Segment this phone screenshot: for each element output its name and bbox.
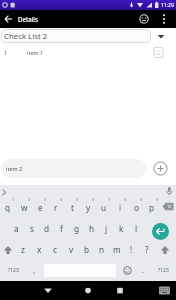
staticText: item 2: [6, 165, 23, 172]
staticText: 11:29: [161, 2, 174, 9]
button[interactable]: k: [114, 217, 129, 240]
button[interactable]: ,: [26, 259, 42, 281]
button[interactable]: [156, 281, 174, 300]
button[interactable]: !: [124, 240, 139, 259]
button[interactable]: [0, 10, 16, 28]
button[interactable]: [80, 281, 96, 300]
button[interactable]: m: [109, 240, 124, 259]
staticText: e: [38, 202, 43, 213]
button[interactable]: 1: [0, 45, 176, 60]
button[interactable]: l: [129, 217, 144, 240]
staticText: w: [21, 202, 28, 213]
staticText: u: [101, 202, 107, 213]
button[interactable]: [152, 29, 172, 43]
button[interactable]: g: [69, 217, 84, 240]
button[interactable]: [152, 160, 169, 177]
staticText: k: [119, 223, 124, 234]
staticText: j: [105, 223, 108, 234]
staticText: o: [134, 202, 139, 213]
button[interactable]: ?123: [150, 259, 176, 281]
staticText: 1: [12, 197, 15, 202]
button[interactable]: c: [47, 240, 63, 259]
staticText: 8: [124, 197, 127, 202]
button[interactable]: ?123: [0, 259, 26, 281]
staticText: 7: [108, 197, 111, 202]
button[interactable]: [144, 217, 176, 240]
button[interactable]: r: [48, 197, 64, 217]
button[interactable]: f: [54, 217, 69, 240]
button[interactable]: z: [15, 240, 31, 259]
staticText: x: [37, 244, 42, 255]
button[interactable]: [40, 281, 56, 300]
staticText: Details: [18, 15, 38, 23]
button[interactable]: [112, 281, 128, 300]
button[interactable]: x: [31, 240, 47, 259]
staticText: ?123: [158, 267, 169, 274]
button[interactable]: h: [84, 217, 99, 240]
staticText: 9: [140, 197, 143, 202]
staticText: Check List 2: [4, 31, 48, 42]
button[interactable]: o: [128, 197, 144, 217]
staticText: p: [149, 202, 155, 213]
staticText: z: [21, 244, 25, 255]
button[interactable]: j: [99, 217, 114, 240]
staticText: i: [119, 202, 122, 213]
staticText: .: [142, 265, 145, 275]
staticText: s: [30, 223, 34, 234]
button[interactable]: [154, 240, 176, 259]
button[interactable]: b: [79, 240, 94, 259]
staticText: v: [69, 244, 74, 255]
staticText: g: [74, 223, 80, 234]
button[interactable]: v: [63, 240, 79, 259]
staticText: ?123: [8, 267, 19, 274]
staticText: h: [89, 223, 95, 234]
staticText: ,: [33, 265, 36, 275]
staticText: l: [135, 223, 138, 234]
staticText: item 1: [27, 49, 44, 56]
button[interactable]: e: [32, 197, 48, 217]
button[interactable]: u: [96, 197, 112, 217]
staticText: 0: [156, 197, 159, 202]
staticText: q: [5, 202, 11, 213]
staticText: 2: [28, 197, 31, 202]
button[interactable]: item 2: [1, 159, 146, 178]
button[interactable]: q: [0, 197, 16, 217]
staticText: 3: [44, 197, 47, 202]
staticText: f: [60, 223, 63, 234]
staticText: r: [54, 202, 58, 213]
button[interactable]: .: [136, 259, 150, 281]
button[interactable]: [160, 197, 176, 217]
button[interactable]: s: [24, 217, 39, 240]
staticText: c: [53, 244, 57, 255]
button[interactable]: t: [64, 197, 80, 217]
staticText: m: [113, 244, 121, 255]
staticText: t: [71, 202, 74, 213]
button[interactable]: a: [8, 217, 24, 240]
staticText: d: [44, 223, 50, 234]
staticText: 6: [92, 197, 95, 202]
staticText: !: [130, 244, 133, 255]
staticText: b: [84, 244, 90, 255]
button[interactable]: [0, 240, 15, 259]
staticText: n: [99, 244, 105, 255]
button[interactable]: w: [16, 197, 32, 217]
button[interactable]: d: [39, 217, 54, 240]
button[interactable]: n: [94, 240, 109, 259]
button[interactable]: [136, 10, 152, 28]
button[interactable]: y: [80, 197, 96, 217]
staticText: ?: [145, 244, 149, 255]
staticText: 4: [60, 197, 63, 202]
button[interactable]: [156, 10, 172, 28]
staticText: a: [14, 223, 19, 234]
button[interactable]: ?: [139, 240, 154, 259]
button[interactable]: Check List 2: [1, 29, 151, 43]
staticText: y: [86, 202, 91, 213]
button[interactable]: i: [112, 197, 128, 217]
staticText: 5: [76, 197, 79, 202]
staticText: 1: [4, 49, 8, 56]
button[interactable]: p: [144, 197, 160, 217]
button[interactable]: [118, 259, 136, 281]
